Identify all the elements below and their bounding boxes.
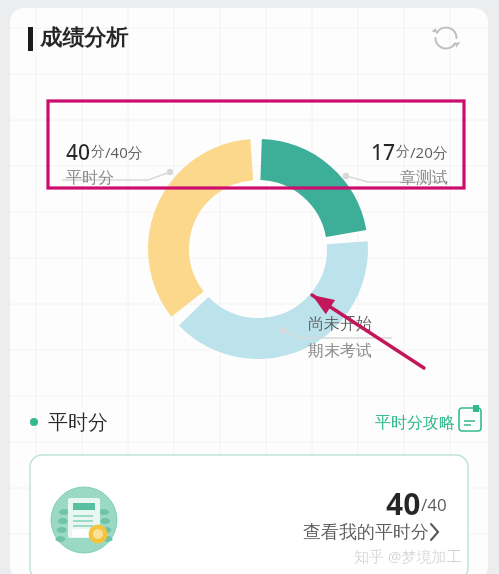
button[interactable] (355, 403, 485, 435)
button[interactable]: Refresh (426, 18, 466, 58)
button[interactable] (30, 455, 468, 574)
